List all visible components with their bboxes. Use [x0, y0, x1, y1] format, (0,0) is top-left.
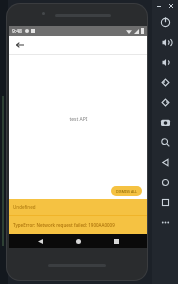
button[interactable]: Rotate right	[152, 92, 178, 112]
button[interactable]: Volume up	[152, 32, 178, 52]
staticText: 9:48	[12, 28, 22, 35]
button[interactable]: Back	[152, 152, 178, 172]
button[interactable]: More	[152, 212, 178, 232]
button[interactable]: Overview	[152, 192, 178, 212]
staticText: TypeError: Network request failed: 1900A…	[13, 222, 115, 228]
button[interactable]: Close	[167, 2, 175, 10]
button[interactable]: Home	[152, 172, 178, 192]
button[interactable]: DISMISS ALL	[111, 186, 142, 196]
button[interactable]: Volume down	[152, 52, 178, 72]
button[interactable]: Back	[33, 234, 47, 248]
button[interactable]: Power	[152, 12, 178, 32]
button[interactable]: Undefined	[9, 199, 147, 215]
button[interactable]: Recent apps	[109, 234, 123, 248]
staticText: Undefined	[13, 204, 36, 210]
button[interactable]: Take screenshot	[152, 112, 178, 132]
button[interactable]: TypeError: Network request failed: 1900A…	[9, 216, 147, 234]
button[interactable]: Minimize	[155, 2, 163, 10]
staticText: test API	[69, 116, 88, 123]
button[interactable]: Back	[13, 38, 27, 52]
button[interactable]: Home	[71, 234, 85, 248]
button[interactable]: Zoom	[152, 132, 178, 152]
button[interactable]: Rotate left	[152, 72, 178, 92]
staticText: DISMISS ALL	[116, 189, 137, 194]
